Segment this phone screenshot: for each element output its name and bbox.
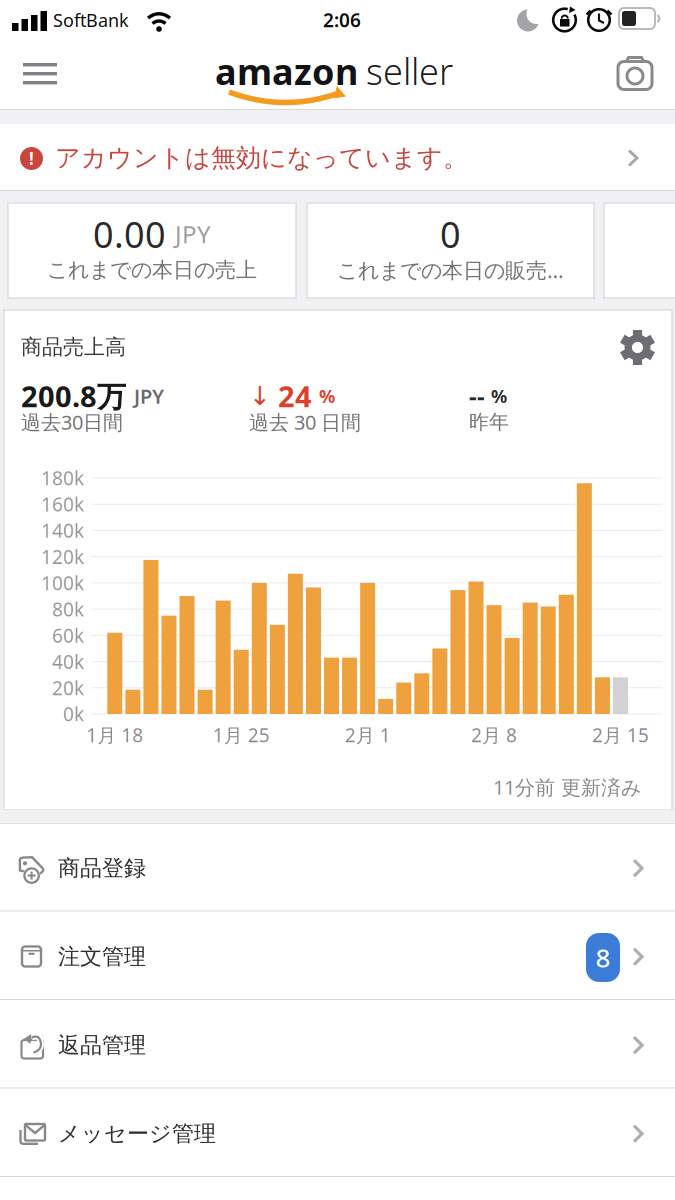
staticText: SoftBank	[53, 8, 129, 32]
staticText: seller	[366, 46, 453, 95]
staticText: 40k	[52, 649, 84, 674]
staticText: アカウントは無効になっています。	[55, 142, 468, 174]
staticText: amazon	[215, 46, 358, 95]
staticText: %	[319, 384, 335, 408]
staticText: 60k	[52, 622, 84, 648]
staticText: メッセージ管理	[58, 1120, 216, 1147]
staticText: ↓	[249, 381, 271, 411]
staticText: 0.00	[93, 209, 166, 258]
button[interactable]: Settings	[620, 329, 656, 366]
staticText: 100k	[41, 570, 84, 596]
button[interactable]: 注文管理	[0, 911, 675, 1000]
staticText: 注文管理	[58, 943, 146, 970]
staticText: 2月 8	[471, 722, 517, 748]
staticText: 昨年	[469, 409, 509, 435]
staticText: 1月 18	[86, 722, 143, 748]
staticText: 80k	[52, 596, 84, 622]
button[interactable]: 0.00	[8, 203, 296, 298]
staticText: 180k	[41, 465, 84, 491]
staticText: 過去30日間	[21, 408, 123, 436]
button[interactable]: !	[0, 124, 675, 191]
staticText: これまでの本日の販売…	[337, 256, 564, 284]
staticText: %	[491, 384, 507, 408]
button[interactable]: 商品登録	[0, 823, 675, 911]
staticText: 2:06	[323, 7, 361, 33]
button[interactable]: 返品管理	[0, 1000, 675, 1088]
staticText: !	[29, 147, 34, 170]
staticText: --	[469, 380, 485, 412]
staticText: これまでの本日の売上	[47, 257, 257, 283]
staticText: 140k	[41, 517, 84, 543]
staticText: 2月 1	[345, 722, 391, 748]
staticText: 商品登録	[58, 854, 146, 882]
button[interactable]: 0	[307, 203, 594, 298]
staticText: JPY	[175, 218, 211, 250]
staticText: 商品売上高	[21, 334, 126, 360]
button[interactable]: Camera	[618, 57, 652, 90]
staticText: JPY	[134, 382, 164, 410]
staticText: 過去 30 日間	[249, 408, 361, 436]
button[interactable]: メッセージ管理	[0, 1088, 675, 1177]
staticText: 0	[440, 209, 461, 258]
staticText: 0k	[63, 701, 84, 727]
staticText: 2月 15	[592, 722, 649, 748]
button[interactable]: Menu	[15, 55, 65, 93]
staticText: 8	[595, 940, 610, 975]
staticText: 返品管理	[58, 1031, 146, 1059]
button[interactable]: Next stat	[604, 203, 675, 298]
staticText: 20k	[52, 675, 84, 701]
staticText: 24	[278, 376, 312, 416]
staticText: 11分前 更新済み	[493, 773, 641, 801]
staticText: 1月 25	[213, 722, 270, 748]
staticText: 200.8万	[21, 376, 126, 416]
staticText: 120k	[41, 544, 84, 570]
staticText: 160k	[41, 491, 84, 517]
